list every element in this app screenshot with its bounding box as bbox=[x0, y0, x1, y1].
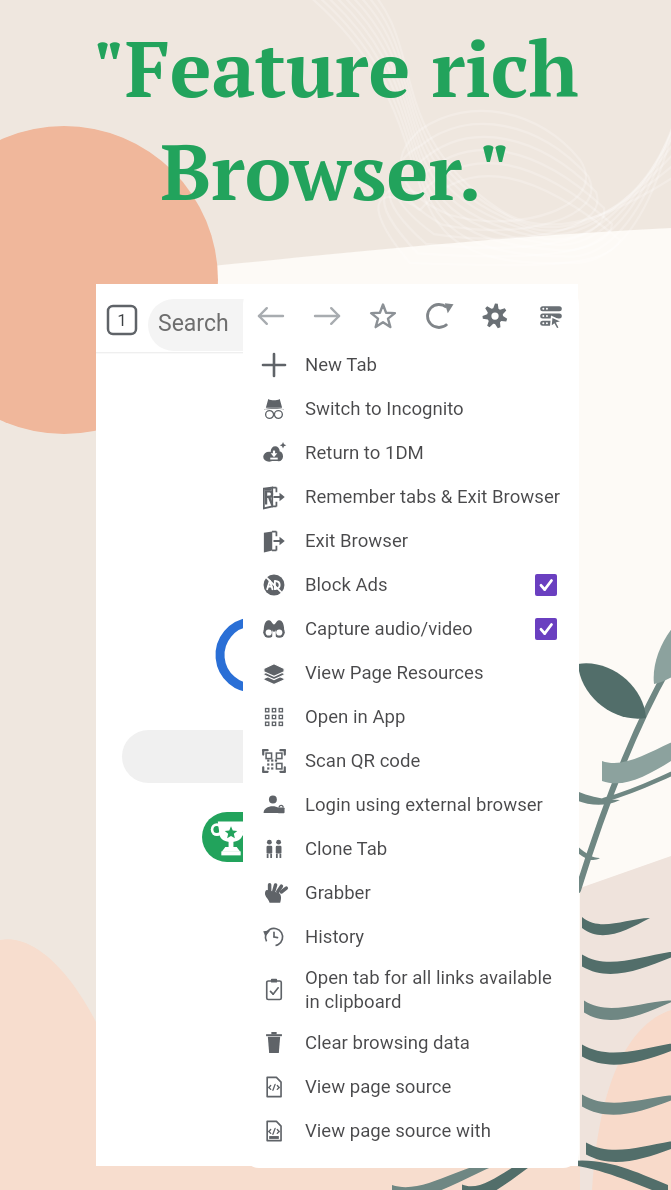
button[interactable]: View Page Resources bbox=[243, 651, 579, 695]
button[interactable]: Capture audio/video bbox=[243, 607, 579, 651]
staticText: View Page Resources bbox=[305, 662, 579, 684]
staticText: "Feature rich bbox=[92, 16, 579, 119]
button[interactable]: Forward bbox=[299, 288, 355, 343]
staticText: View page source bbox=[305, 1076, 579, 1098]
staticText: Return to 1DM bbox=[305, 442, 579, 464]
staticText: Switch to Incognito bbox=[305, 398, 579, 420]
button[interactable]: Remember tabs & Exit Browser bbox=[243, 475, 579, 519]
staticText: Search bbox=[158, 310, 229, 337]
button[interactable]: Block Ads bbox=[243, 563, 579, 607]
staticText: Clone Tab bbox=[305, 838, 579, 860]
staticText: Remember tabs & Exit Browser bbox=[305, 486, 579, 508]
button[interactable]: Bookmark bbox=[355, 288, 411, 343]
button[interactable]: Return to 1DM bbox=[243, 431, 579, 475]
staticText: Open tab for all links available in clip… bbox=[305, 967, 579, 1013]
button[interactable]: Scan QR code bbox=[243, 739, 579, 783]
staticText: Browser." bbox=[160, 119, 511, 222]
button[interactable]: View page source bbox=[243, 1065, 579, 1109]
staticText: View page source with bbox=[305, 1120, 579, 1142]
staticText: Block Ads bbox=[305, 574, 535, 596]
button[interactable]: History bbox=[243, 915, 579, 959]
staticText: New Tab bbox=[305, 354, 579, 376]
staticText: Scan QR code bbox=[305, 750, 579, 772]
staticText: Grabber bbox=[305, 882, 579, 904]
staticText: Capture audio/video bbox=[305, 618, 535, 640]
button[interactable]: New Tab bbox=[243, 343, 579, 387]
button[interactable]: View page source with bbox=[243, 1109, 579, 1153]
button[interactable]: Back bbox=[243, 288, 299, 343]
staticText: 1 bbox=[108, 310, 136, 330]
button[interactable]: Login using external browser bbox=[243, 783, 579, 827]
staticText: Login using external browser bbox=[305, 794, 579, 816]
button[interactable]: Preferences bbox=[523, 288, 579, 343]
button[interactable]: Exit Browser bbox=[243, 519, 579, 563]
button[interactable]: Reload bbox=[411, 288, 467, 343]
button[interactable]: Open tab for all links available in clip… bbox=[243, 959, 579, 1021]
button[interactable]: Settings bbox=[467, 288, 523, 343]
button[interactable]: Clone Tab bbox=[243, 827, 579, 871]
button[interactable]: Open in App bbox=[243, 695, 579, 739]
button[interactable]: Grabber bbox=[243, 871, 579, 915]
button[interactable]: Clear browsing data bbox=[243, 1021, 579, 1065]
staticText: Clear browsing data bbox=[305, 1032, 579, 1054]
button[interactable]: Switch to Incognito bbox=[243, 387, 579, 431]
staticText: Open in App bbox=[305, 706, 579, 728]
staticText: History bbox=[305, 926, 579, 948]
staticText: Exit Browser bbox=[305, 530, 579, 552]
